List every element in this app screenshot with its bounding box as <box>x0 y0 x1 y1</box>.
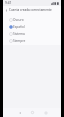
staticText: Cuenta creada correctamente <box>9 8 52 12</box>
staticText: Sistema <box>13 32 25 36</box>
staticText: Siempre <box>13 39 26 43</box>
button[interactable]: Siempre <box>3 37 61 44</box>
button[interactable]: Back <box>13 108 26 117</box>
button[interactable]: Back <box>3 6 9 14</box>
staticText: 9:41 <box>5 1 12 5</box>
button[interactable]: Sistema <box>3 30 61 37</box>
staticText: Español <box>13 25 25 29</box>
button[interactable]: Oscuro <box>3 16 61 23</box>
button[interactable]: Español <box>3 23 61 30</box>
button[interactable]: Home <box>26 108 39 117</box>
button[interactable]: Recents <box>39 108 52 117</box>
staticText: Oscuro <box>13 18 24 22</box>
